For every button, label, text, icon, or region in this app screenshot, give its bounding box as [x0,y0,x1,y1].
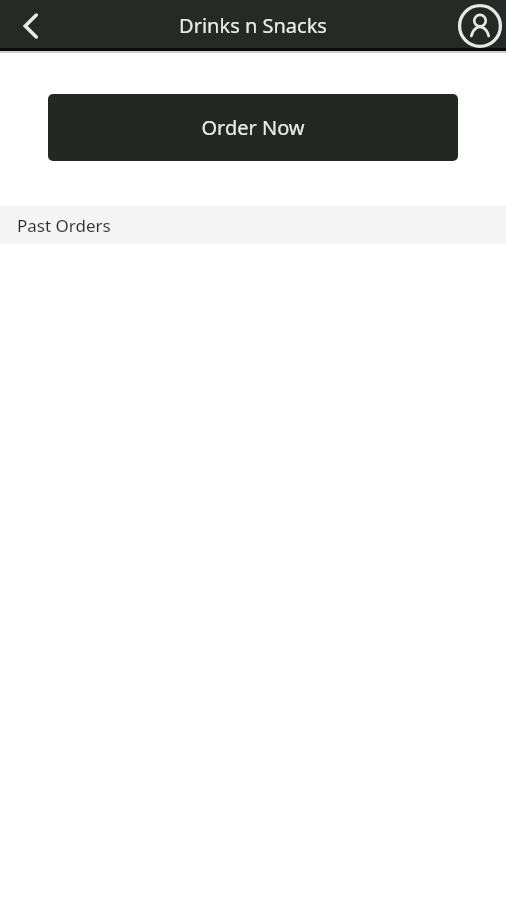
button[interactable]: Profile [454,0,506,51]
staticText: Drinks n Snacks [179,12,327,39]
staticText: Order Now [201,114,305,141]
button[interactable]: Order Now [48,94,458,161]
staticText: Past Orders [17,214,111,237]
button[interactable]: Back [0,0,62,51]
